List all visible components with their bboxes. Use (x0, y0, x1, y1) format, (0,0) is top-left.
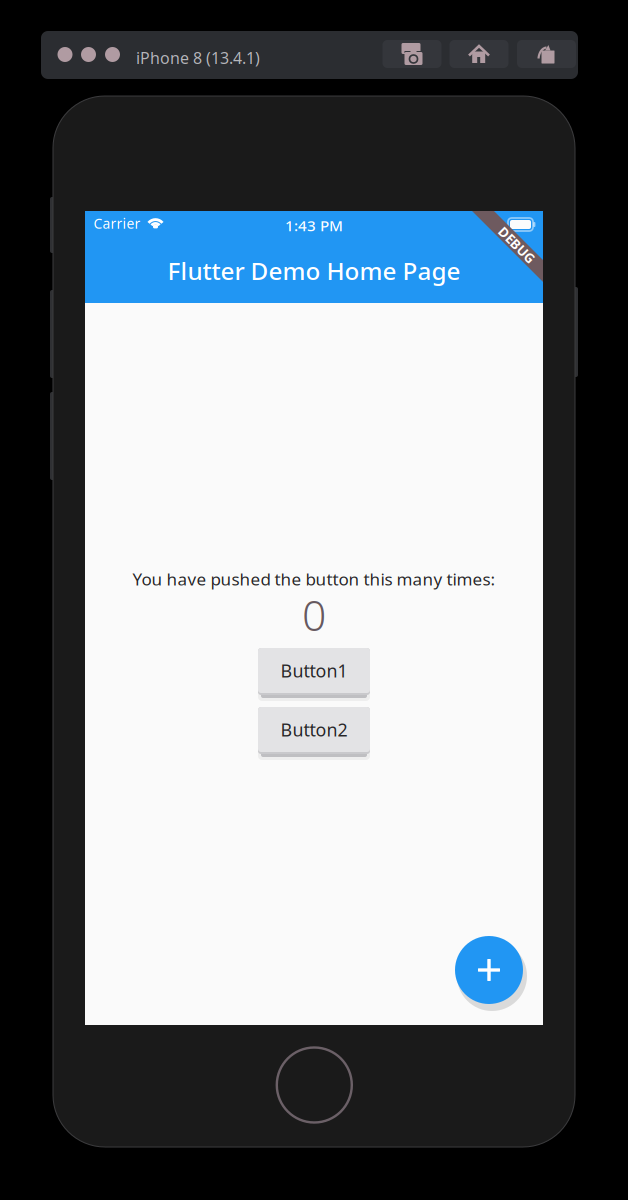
button[interactable]: Button1 (258, 648, 370, 702)
button[interactable]: Increment (454, 935, 528, 1011)
button[interactable]: Rotate (517, 40, 576, 68)
staticText: Flutter Demo Home Page (167, 254, 460, 287)
button[interactable]: Button2 (258, 707, 370, 761)
button[interactable]: Screenshot (382, 40, 441, 68)
staticText: Button2 (280, 717, 347, 742)
staticText: Button1 (280, 658, 347, 683)
staticText: You have pushed the button this many tim… (132, 567, 495, 591)
staticText: 1:43 PM (285, 215, 343, 236)
staticText: DEBUG (494, 236, 540, 254)
staticText: Carrier (93, 214, 140, 233)
button[interactable]: Home (449, 40, 508, 68)
staticText: iPhone 8 (13.4.1) (136, 47, 260, 69)
staticText: 0 (302, 585, 326, 643)
